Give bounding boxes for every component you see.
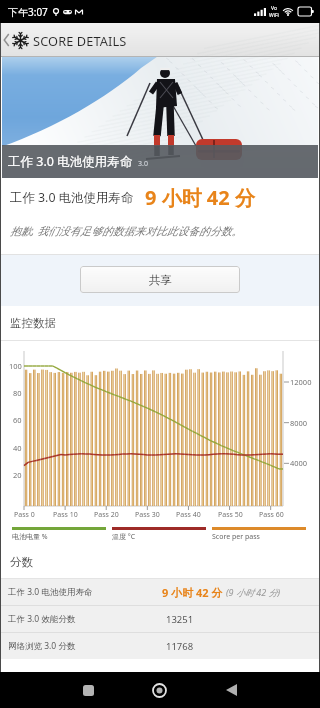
- staticText: 80: [13, 388, 22, 398]
- staticText: 工作 3.0 电池使用寿命: [10, 189, 134, 206]
- staticText: 4000: [290, 458, 308, 468]
- staticText: 工作 3.0 电池使用寿命: [8, 586, 93, 598]
- staticText: 100: [9, 361, 22, 371]
- staticText: Pass 60: [259, 510, 284, 520]
- staticText: 分数: [10, 555, 33, 569]
- staticText: Pass 20: [94, 510, 119, 520]
- staticText: 20: [13, 470, 22, 480]
- staticText: 12000: [290, 377, 312, 387]
- staticText: Vo: [271, 5, 277, 12]
- staticText: 9 小时 42 分: [162, 585, 223, 600]
- staticText: 3.0: [138, 159, 148, 169]
- staticText: 13251: [166, 613, 194, 626]
- staticText: 工作 3.0 效能分数: [8, 613, 76, 625]
- button[interactable]: 工作 3.0 效能分数: [0, 606, 320, 632]
- staticText: Pass 10: [53, 510, 78, 520]
- button[interactable]: 网络浏览 3.0 分数: [0, 633, 320, 659]
- staticText: Score per pass: [212, 532, 260, 542]
- staticText: 下午3:07: [8, 5, 48, 19]
- staticText: 电池电量 %: [12, 532, 48, 542]
- staticText: 11768: [166, 640, 194, 653]
- button[interactable]: 共享: [80, 266, 240, 293]
- staticText: 60: [13, 415, 22, 425]
- staticText: 监控数据: [10, 316, 56, 330]
- staticText: 抱歉, 我们没有足够的数据来对比此设备的分数。: [10, 223, 243, 238]
- staticText: SCORE DETAILS: [33, 32, 127, 49]
- staticText: (9 小时 42 分): [226, 586, 281, 598]
- staticText: Pass 40: [176, 510, 201, 520]
- staticText: 40: [13, 443, 22, 453]
- staticText: WiFi: [269, 12, 279, 19]
- staticText: 8000: [290, 418, 308, 428]
- button[interactable]: Home: [137, 672, 181, 708]
- button[interactable]: Back: [209, 672, 253, 708]
- staticText: 9 小时 42 分: [145, 184, 255, 211]
- staticText: Pass 50: [218, 510, 243, 520]
- button[interactable]: 工作 3.0 电池使用寿命: [0, 579, 320, 605]
- button[interactable]: Recent apps: [66, 672, 110, 708]
- staticText: 共享: [149, 273, 172, 287]
- staticText: Pass 0: [14, 510, 35, 520]
- staticText: 温度 °C: [112, 532, 136, 542]
- staticText: Pass 30: [135, 510, 160, 520]
- staticText: 工作 3.0 电池使用寿命: [8, 153, 133, 170]
- staticText: 网络浏览 3.0 分数: [8, 640, 76, 652]
- button[interactable]: Back: [0, 23, 13, 57]
